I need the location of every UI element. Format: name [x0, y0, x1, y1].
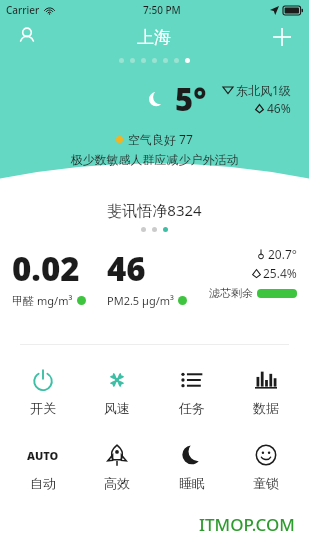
staticText: 25.4% [263, 265, 297, 281]
staticText: PM2.5 µg/m³ [107, 293, 174, 308]
staticText: 滤芯剩余 [209, 286, 253, 300]
staticText: mg/m³ [37, 293, 73, 308]
other: Sleep [181, 444, 203, 466]
other: Tasks [181, 369, 203, 391]
staticText: 斐讯悟净8324 [0, 200, 309, 220]
other: Fan speed [106, 369, 128, 391]
staticText: 空气良好 77 [128, 131, 193, 147]
staticText: 睡眠 [179, 475, 205, 491]
staticText: AUTO [27, 448, 59, 463]
button[interactable]: High efficiency [86, 440, 148, 493]
button[interactable]: Tasks [161, 365, 223, 418]
button[interactable]: Add device [267, 22, 297, 52]
button[interactable]: AUTO [12, 440, 74, 493]
staticText: 东北风1级 [236, 82, 291, 98]
staticText: 46% [267, 100, 291, 116]
button[interactable]: Profile [12, 22, 42, 52]
button[interactable]: Data [235, 365, 297, 418]
other: High efficiency [106, 444, 128, 466]
staticText: 极少数敏感人群应减少户外活动 [0, 152, 309, 167]
staticText: 46 [107, 246, 146, 291]
staticText: 7:50 PM [143, 3, 181, 17]
staticText: 0.02 [12, 246, 80, 291]
staticText: 甲醛 [12, 293, 37, 308]
button[interactable]: Sleep [161, 440, 223, 493]
staticText: 任务 [179, 400, 205, 416]
staticText: 20.7° [268, 246, 297, 262]
staticText: 童锁 [253, 475, 279, 491]
other: Data [255, 369, 277, 391]
staticText: ITMOP.COM [199, 513, 295, 536]
staticText: 数据 [253, 400, 279, 416]
other: Child lock [255, 444, 277, 466]
staticText: 开关 [30, 400, 56, 416]
other: Power [32, 369, 54, 391]
staticText: 5° [175, 78, 207, 120]
button[interactable]: Power [12, 365, 74, 418]
staticText: 高效 [104, 475, 130, 491]
button[interactable]: Fan speed [86, 365, 148, 418]
staticText: Carrier [6, 3, 40, 17]
button[interactable]: Child lock [235, 440, 297, 493]
staticText: 风速 [104, 400, 130, 416]
staticText: 自动 [30, 475, 56, 491]
staticText: 上海 [137, 27, 171, 48]
